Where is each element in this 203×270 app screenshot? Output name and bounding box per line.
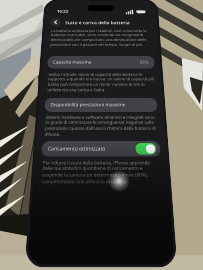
staticText: Capacità massima	[53, 59, 92, 65]
button[interactable]: Disponibilità prestazioni massime	[44, 98, 158, 112]
staticText: Disponibilità prestazioni massime	[50, 101, 126, 108]
button[interactable]: Capacità massima	[47, 56, 155, 69]
button[interactable]: Back	[51, 18, 61, 27]
staticText: Caricamento ottimizzato	[48, 145, 106, 153]
staticText: Stato e carica della batteria	[65, 19, 130, 25]
staticText: La batteria utilizzata per i telefoni, c…	[50, 28, 154, 47]
staticText: 88%	[139, 59, 149, 65]
staticText: 16:22	[57, 9, 68, 14]
button[interactable]: Caricamento ottimizzato	[41, 141, 161, 157]
staticText: Sistemi hardware e software dinamici e i…	[44, 114, 160, 138]
staticText: Per ridurre l'usura della batteria, iPho…	[41, 159, 163, 186]
staticText: Indica l'attuale valore di capacità dell…	[47, 71, 157, 93]
